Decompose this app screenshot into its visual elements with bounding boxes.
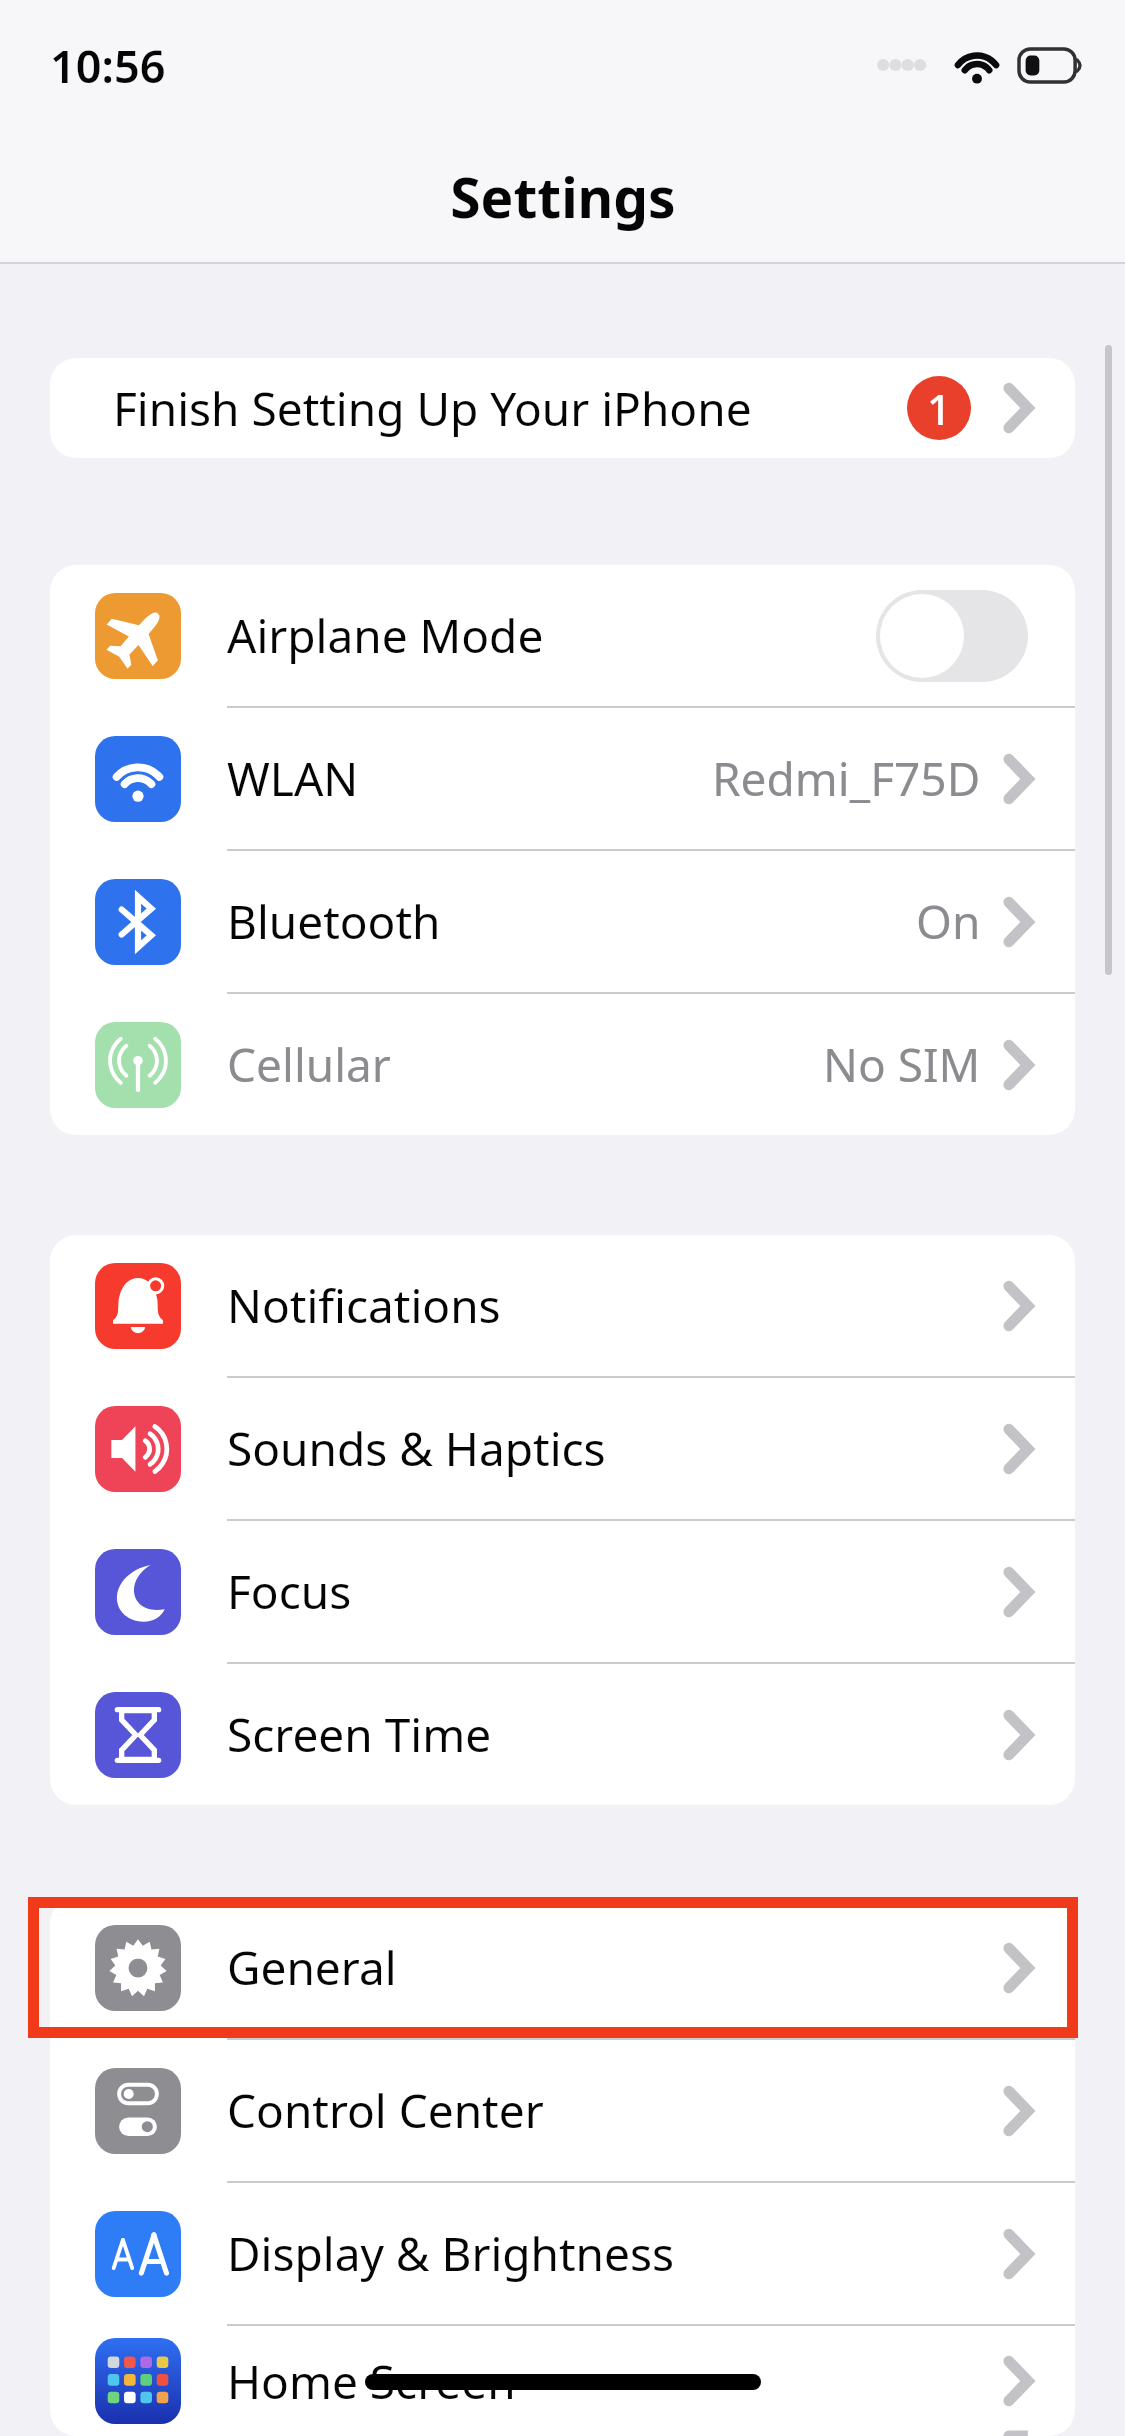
staticText: WLAN	[227, 747, 359, 810]
staticText: On	[916, 890, 981, 953]
staticText: 10:56	[50, 35, 166, 96]
button[interactable]: Cellular	[50, 994, 1075, 1135]
button[interactable]: Airplane Mode switch, off	[876, 590, 1028, 682]
staticText: Finish Setting Up Your iPhone	[113, 377, 752, 440]
button[interactable]: General	[50, 1897, 1075, 2040]
staticText: Focus	[227, 1560, 352, 1623]
staticText: Sounds & Haptics	[227, 1417, 606, 1480]
button[interactable]: Airplane Mode	[50, 565, 1075, 708]
staticText: No SIM	[823, 1033, 981, 1096]
staticText: Control Center	[227, 2079, 544, 2142]
button[interactable]: Home Screen	[50, 2326, 1075, 2436]
button[interactable]: Finish Setting Up Your iPhone	[50, 358, 1075, 458]
button[interactable]: Display & Brightness	[50, 2183, 1075, 2326]
staticText: Notifications	[227, 1274, 501, 1337]
button[interactable]: Focus	[50, 1521, 1075, 1664]
button[interactable]: Screen Time	[50, 1664, 1075, 1805]
button[interactable]: Notifications	[50, 1235, 1075, 1378]
staticText: General	[227, 1936, 397, 1999]
staticText: Screen Time	[227, 1703, 492, 1766]
staticText: Home Screen	[227, 2350, 516, 2413]
staticText: Airplane Mode	[227, 604, 544, 667]
button[interactable]: Control Center	[50, 2040, 1075, 2183]
staticText: 1	[927, 380, 952, 437]
button[interactable]: Bluetooth	[50, 851, 1075, 994]
staticText: Redmi_F75D	[712, 747, 981, 810]
button[interactable]: WLAN	[50, 708, 1075, 851]
staticText: Settings	[450, 159, 676, 234]
button[interactable]: Sounds & Haptics	[50, 1378, 1075, 1521]
staticText: Display & Brightness	[227, 2222, 675, 2285]
staticText: Cellular	[227, 1033, 391, 1096]
staticText: Bluetooth	[227, 890, 441, 953]
